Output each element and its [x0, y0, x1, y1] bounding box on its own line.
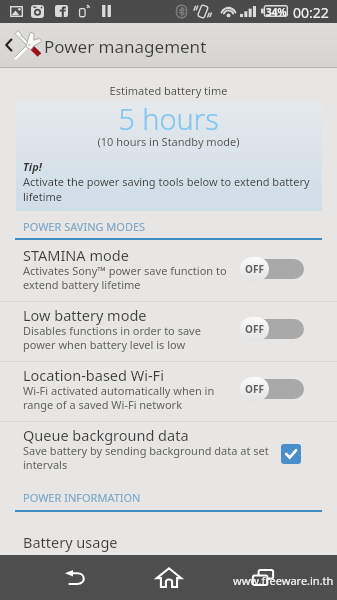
staticText: 5 hours	[0, 99, 337, 138]
staticText: OFF	[245, 382, 264, 396]
staticText: Battery usage	[23, 532, 118, 552]
staticText: (10 hours in Standby mode)	[0, 134, 337, 149]
staticText: Save battery by sending background data …	[23, 443, 269, 458]
button[interactable]: Navigate up	[0, 23, 44, 68]
staticText: OFF	[245, 322, 264, 336]
staticText: Low battery mode	[23, 305, 147, 325]
staticText: STAMINA mode	[23, 245, 129, 265]
staticText: Disables functions in order to save	[23, 323, 201, 338]
staticText: power when battery level is low	[23, 337, 186, 352]
staticText: Location-based Wi-Fi	[23, 365, 164, 385]
button[interactable]: Low battery mode	[0, 301, 337, 361]
button[interactable]: Back	[28, 555, 122, 600]
staticText: extend battery lifetime	[23, 277, 141, 292]
staticText: POWER INFORMATION	[23, 490, 141, 505]
staticText: Estimated battery time	[0, 83, 337, 98]
staticText: 34%	[266, 5, 287, 17]
button[interactable]: STAMINA mode	[0, 241, 337, 301]
staticText: OFF	[245, 262, 264, 276]
staticText: Wi-Fi activated automatically when in	[23, 383, 215, 398]
button[interactable]: Recent apps	[216, 555, 310, 600]
staticText: POWER SAVING MODES	[23, 219, 146, 234]
staticText: 00:22	[293, 3, 329, 22]
button[interactable]: Queue background data	[0, 421, 337, 481]
button[interactable]: Battery usage	[0, 513, 337, 555]
staticText: Queue background data	[23, 425, 189, 445]
staticText: range of a saved Wi-Fi network	[23, 397, 183, 412]
button[interactable]: Home	[122, 555, 216, 600]
staticText: Power management	[44, 35, 207, 58]
button[interactable]: Location-based Wi-Fi	[0, 361, 337, 421]
staticText: Activates Sony™ power save function to	[23, 263, 227, 278]
staticText: Activate the power saving tools below to…	[23, 174, 323, 204]
staticText: www.freeware.in.th	[233, 573, 334, 588]
staticText: intervals	[23, 457, 68, 472]
staticText: Tip!	[23, 159, 42, 174]
